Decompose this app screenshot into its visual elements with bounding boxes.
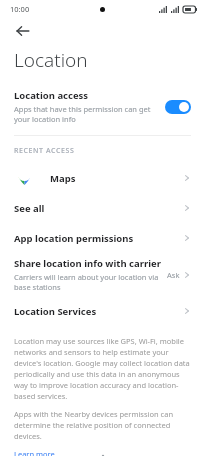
button[interactable]: Maps — [0, 163, 205, 193]
staticText: Apps that have this permission can get y… — [14, 104, 159, 124]
staticText: Apps with the Nearby devices permission … — [14, 409, 191, 441]
button[interactable]: Back — [10, 18, 36, 44]
button[interactable]: Location access — [0, 87, 205, 126]
staticText: Learn more — [14, 449, 55, 456]
button[interactable]: Share location info with carrier — [0, 253, 205, 296]
button[interactable]: See all — [0, 193, 205, 223]
button[interactable] — [165, 100, 191, 114]
staticText: Ask — [167, 270, 180, 280]
staticText: Location — [14, 47, 88, 73]
staticText: See all — [14, 202, 45, 215]
staticText: Maps — [50, 172, 76, 185]
button[interactable]: Learn more — [14, 449, 55, 456]
staticText: Carriers will learn about your location … — [14, 272, 164, 292]
staticText: App location permissions — [14, 232, 134, 245]
button[interactable]: Location Services — [0, 296, 205, 326]
staticText: 10:00 — [10, 4, 30, 14]
staticText: Location access — [14, 89, 89, 102]
staticText: RECENT ACCESS — [14, 146, 75, 156]
staticText: Share location info with carrier — [14, 257, 161, 270]
staticText: Location Services — [14, 305, 97, 318]
button[interactable]: App location permissions — [0, 223, 205, 253]
staticText: Location may use sources like GPS, Wi-Fi… — [14, 336, 191, 401]
